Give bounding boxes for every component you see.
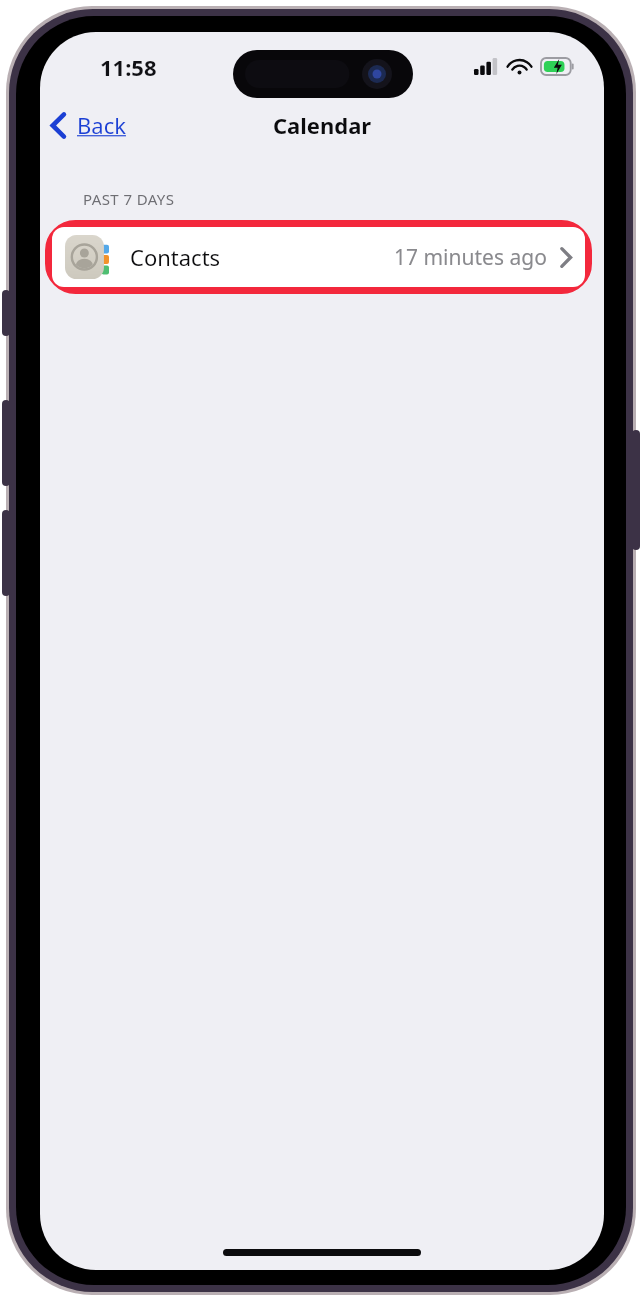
staticText: Calendar xyxy=(273,110,372,140)
staticText: 17 minutes ago xyxy=(394,243,547,272)
button[interactable]: Back xyxy=(46,106,134,144)
staticText: Back xyxy=(77,110,126,140)
button[interactable]: Contacts xyxy=(52,227,585,287)
staticText: 11:58 xyxy=(100,52,157,82)
staticText: Contacts xyxy=(130,242,221,272)
staticText: PAST 7 DAYS xyxy=(83,189,175,209)
